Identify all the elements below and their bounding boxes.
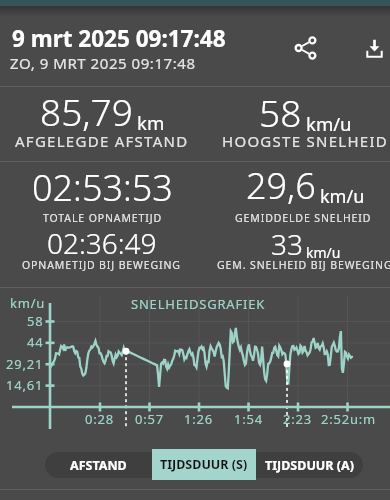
staticText: 29,6 [246, 161, 316, 210]
staticText: ZO, 9 MRT 2025 09:17:48 [10, 53, 196, 73]
button[interactable]: Download [350, 24, 390, 72]
staticText: km/u [306, 243, 341, 262]
staticText: km/u [10, 294, 46, 312]
staticText: 9 mrt 2025 09:17:48 [12, 23, 226, 54]
staticText: TIJDSDUUR (A) [265, 457, 354, 474]
staticText: 85,79 [40, 86, 133, 136]
staticText: 02:36:49 [47, 224, 157, 262]
staticText: 58 [27, 312, 44, 330]
staticText: 0:57 [135, 410, 164, 428]
button[interactable]: Share [282, 24, 330, 72]
staticText: 44 [27, 333, 44, 351]
staticText: 2:52u:m [321, 410, 377, 428]
staticText: OPNAMETIJD BIJ BEWEGING [22, 258, 181, 272]
staticText: SNELHEIDSGRAFIEK [131, 295, 266, 313]
staticText: 14,61 [6, 376, 44, 394]
staticText: 02:53:53 [32, 163, 173, 212]
staticText: AFGELEGDE AFSTAND [15, 131, 189, 151]
staticText: km/u [306, 111, 352, 136]
staticText: 33 [271, 225, 303, 263]
staticText: AFSTAND [70, 457, 127, 474]
staticText: 1:26 [184, 410, 213, 428]
staticText: HOOGSTE SNELHEID [222, 131, 389, 151]
staticText: 2:23 [283, 410, 312, 428]
button[interactable]: TIJDSDUUR (A) [256, 452, 363, 478]
staticText: 29,21 [6, 355, 44, 373]
staticText: TOTALE OPNAMETIJD [43, 211, 163, 225]
staticText: TIJDSDUUR (S) [160, 456, 248, 473]
button[interactable]: AFSTAND [45, 452, 152, 478]
staticText: km [137, 110, 165, 135]
staticText: GEM. SNELHEID BIJ BEWEGING [217, 258, 390, 272]
staticText: GEMIDDELDE SNELHEID [235, 211, 372, 225]
staticText: 1:54 [234, 410, 263, 428]
staticText: km/u [320, 184, 365, 209]
staticText: 58 [259, 87, 302, 137]
staticText: 0:28 [85, 410, 114, 428]
button[interactable]: TIJDSDUUR (S) [152, 449, 256, 480]
